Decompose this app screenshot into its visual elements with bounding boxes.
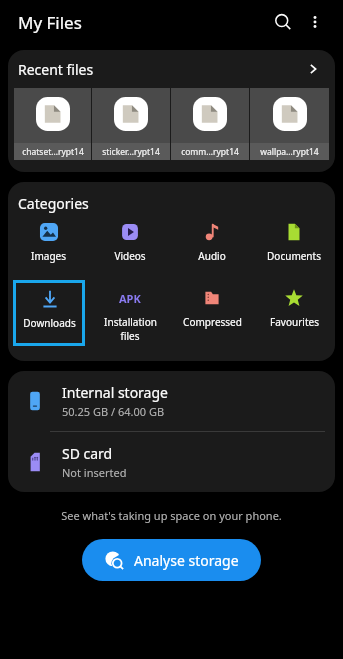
- button[interactable]: Audio: [171, 219, 253, 275]
- other: See all recent files: [303, 59, 323, 79]
- button[interactable]: chatset…rypt14: [14, 88, 91, 160]
- staticText: APK: [119, 291, 141, 306]
- staticText: Compressed: [183, 315, 242, 329]
- staticText: Not inserted: [62, 465, 127, 480]
- button[interactable]: Documents: [253, 219, 335, 275]
- staticText: See what's taking up space on your phone…: [61, 508, 282, 523]
- button[interactable]: Compressed: [171, 279, 253, 347]
- staticText: Videos: [114, 249, 146, 263]
- button[interactable]: APK: [89, 279, 171, 347]
- staticText: Categories: [18, 194, 89, 213]
- button[interactable]: Favourites: [253, 279, 335, 347]
- staticText: files: [120, 329, 140, 343]
- button[interactable]: Images: [8, 219, 89, 275]
- staticText: SD card: [62, 444, 113, 463]
- button[interactable]: comm…rypt14: [171, 88, 249, 160]
- staticText: 50.25 GB / 64.00 GB: [62, 404, 165, 419]
- staticText: Recent files: [18, 60, 303, 79]
- button[interactable]: More options: [299, 6, 331, 38]
- button[interactable]: wallpa…rypt14: [250, 88, 329, 160]
- button[interactable]: Recent files: [8, 50, 335, 88]
- staticText: My Files: [18, 11, 82, 34]
- staticText: Audio: [198, 249, 226, 263]
- button[interactable]: Internal storage: [8, 371, 335, 431]
- staticText: Favourites: [270, 315, 319, 329]
- button[interactable]: Analyse storage: [82, 539, 261, 581]
- staticText: Images: [31, 249, 66, 263]
- button[interactable]: Videos: [89, 219, 171, 275]
- button[interactable]: Downloads: [13, 280, 85, 346]
- button[interactable]: Search: [267, 6, 299, 38]
- staticText: sticker…rypt14: [102, 146, 160, 158]
- staticText: chatset…rypt14: [22, 146, 84, 158]
- staticText: Analyse storage: [134, 551, 239, 570]
- staticText: Documents: [267, 249, 321, 263]
- staticText: comm…rypt14: [181, 146, 239, 158]
- staticText: Downloads: [23, 316, 76, 330]
- staticText: Installation: [104, 315, 157, 329]
- staticText: Internal storage: [62, 383, 168, 402]
- staticText: wallpa…rypt14: [260, 146, 319, 158]
- button[interactable]: SD card: [8, 432, 335, 492]
- button[interactable]: sticker…rypt14: [92, 88, 170, 160]
